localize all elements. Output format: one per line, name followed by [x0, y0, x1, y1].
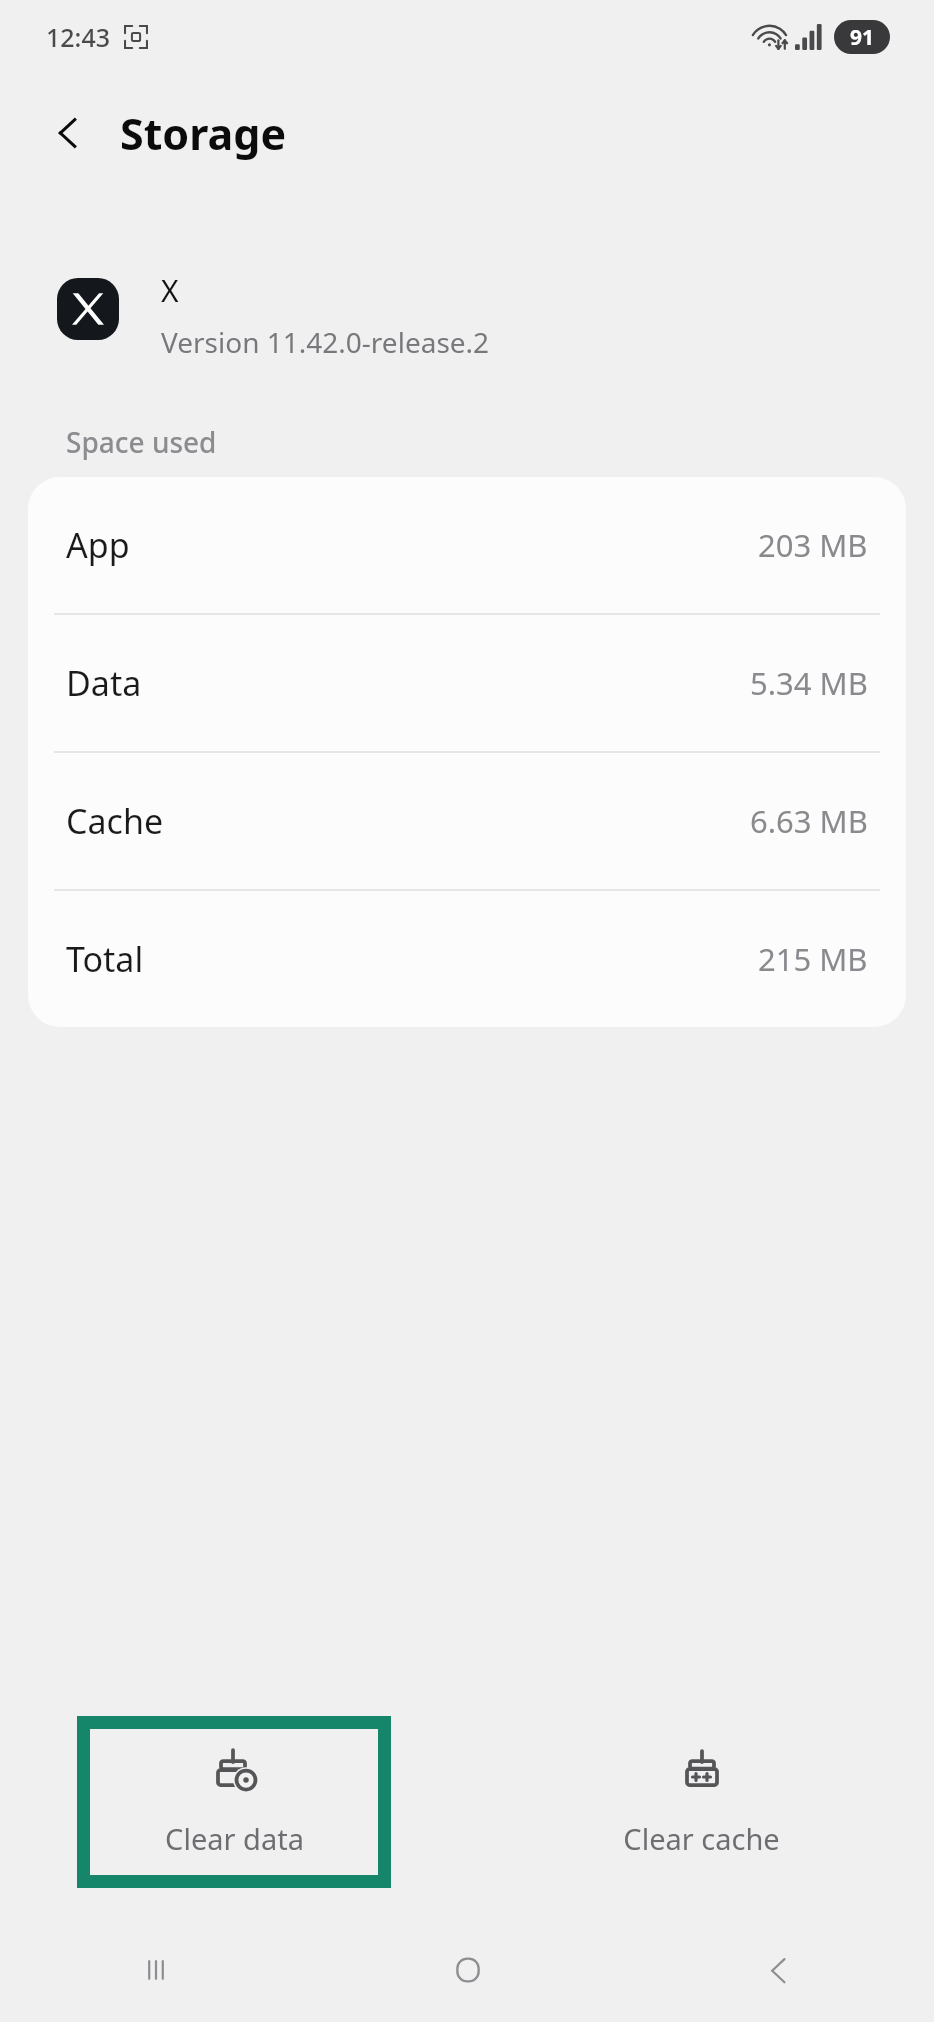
staticText: Clear data — [165, 1819, 304, 1858]
staticText: Total — [66, 936, 144, 982]
staticText: App — [66, 522, 130, 568]
staticText: X — [161, 270, 179, 311]
staticText: Clear cache — [623, 1819, 780, 1858]
button[interactable]: Total — [28, 891, 906, 1027]
staticText: 203 MB — [758, 524, 868, 566]
button[interactable]: Back — [623, 1918, 934, 2022]
button[interactable]: Clear data — [90, 1729, 378, 1875]
button[interactable]: Home — [312, 1918, 623, 2022]
staticText: 215 MB — [758, 938, 868, 980]
staticText: Version 11.42.0-release.2 — [161, 323, 490, 361]
staticText: Data — [66, 660, 142, 706]
staticText: 6.63 MB — [750, 800, 868, 842]
staticText: 12:43 — [46, 20, 111, 54]
button[interactable]: Back — [34, 98, 104, 168]
staticText: Space used — [66, 423, 217, 461]
staticText: Storage — [120, 104, 287, 163]
staticText: Cache — [66, 798, 164, 844]
button[interactable]: Clear cache — [544, 1716, 858, 1888]
button[interactable]: Cache — [28, 753, 906, 889]
staticText: 5.34 MB — [750, 662, 868, 704]
button[interactable]: Data — [28, 615, 906, 751]
staticText: 91 — [850, 23, 875, 52]
button[interactable]: App — [28, 477, 906, 613]
button[interactable]: Recents — [0, 1918, 312, 2022]
